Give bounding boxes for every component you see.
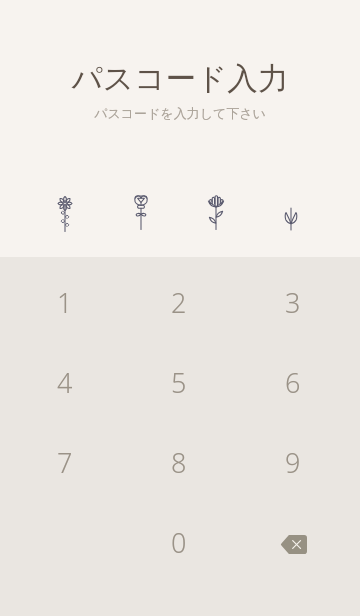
staticText: 5: [171, 364, 187, 401]
button[interactable]: 3: [255, 272, 331, 332]
button[interactable]: 0: [141, 512, 217, 572]
button[interactable]: 9: [255, 432, 331, 492]
button[interactable]: 8: [141, 432, 217, 492]
staticText: 2: [171, 284, 187, 321]
staticText: 9: [285, 444, 301, 481]
button[interactable]: 2: [141, 272, 217, 332]
button[interactable]: 7: [27, 432, 103, 492]
staticText: 7: [57, 444, 73, 481]
button[interactable]: Backspace: [255, 514, 331, 574]
staticText: パスコードを入力して下さい: [94, 105, 266, 121]
staticText: 1: [57, 284, 73, 321]
button[interactable]: 6: [255, 352, 331, 412]
staticText: パスコード入力: [71, 60, 289, 99]
staticText: 3: [285, 284, 301, 321]
staticText: 4: [57, 364, 73, 401]
staticText: 0: [171, 524, 187, 561]
staticText: 6: [285, 364, 301, 401]
button[interactable]: 1: [27, 272, 103, 332]
staticText: 8: [171, 444, 187, 481]
button[interactable]: 5: [141, 352, 217, 412]
button[interactable]: 4: [27, 352, 103, 412]
